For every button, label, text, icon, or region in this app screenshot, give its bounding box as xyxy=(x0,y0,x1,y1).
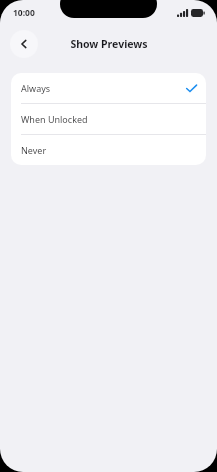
staticText: Show Previews xyxy=(70,37,148,51)
staticText: When Unlocked xyxy=(21,113,88,125)
button[interactable]: Never xyxy=(11,135,206,165)
button[interactable]: Always xyxy=(11,73,206,103)
staticText: Always xyxy=(21,82,51,94)
staticText: 10:00 xyxy=(13,7,35,19)
staticText: Never xyxy=(21,144,47,156)
button[interactable]: Back xyxy=(10,30,38,58)
button[interactable]: When Unlocked xyxy=(11,104,206,134)
